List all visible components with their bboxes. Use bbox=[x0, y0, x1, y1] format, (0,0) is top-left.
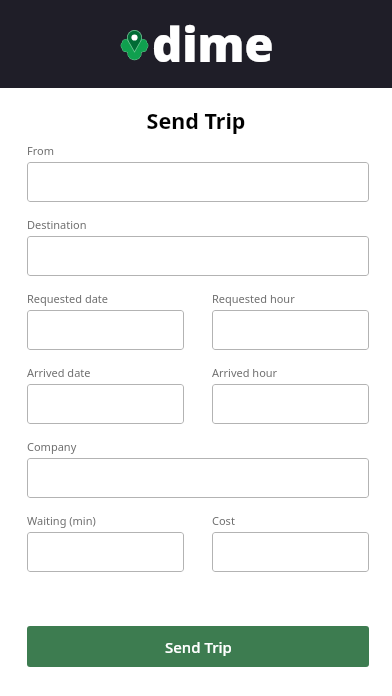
button[interactable]: Arrived date bbox=[27, 384, 184, 424]
button[interactable]: dime home bbox=[119, 12, 274, 76]
button[interactable]: From bbox=[27, 162, 369, 202]
button[interactable]: Requested hour bbox=[212, 310, 369, 350]
button[interactable]: Arrived hour bbox=[212, 384, 369, 424]
staticText: Arrived hour bbox=[212, 365, 278, 380]
staticText: Company bbox=[27, 439, 77, 454]
staticText: Cost bbox=[212, 513, 235, 528]
staticText: Requested hour bbox=[212, 291, 295, 306]
button[interactable]: Destination bbox=[27, 236, 369, 276]
staticText: Waiting (min) bbox=[27, 513, 96, 528]
staticText: Send Trip bbox=[0, 106, 392, 135]
button[interactable]: Requested date bbox=[27, 310, 184, 350]
button[interactable]: Waiting (min) bbox=[27, 532, 184, 572]
staticText: Destination bbox=[27, 217, 87, 232]
staticText: From bbox=[27, 143, 54, 158]
button[interactable]: Send Trip bbox=[27, 626, 369, 667]
button[interactable]: Cost bbox=[212, 532, 369, 572]
staticText: Send Trip bbox=[165, 637, 232, 657]
staticText: Requested date bbox=[27, 291, 108, 306]
staticText: Arrived date bbox=[27, 365, 91, 380]
button[interactable]: Company bbox=[27, 458, 369, 498]
staticText: dime bbox=[152, 12, 274, 76]
